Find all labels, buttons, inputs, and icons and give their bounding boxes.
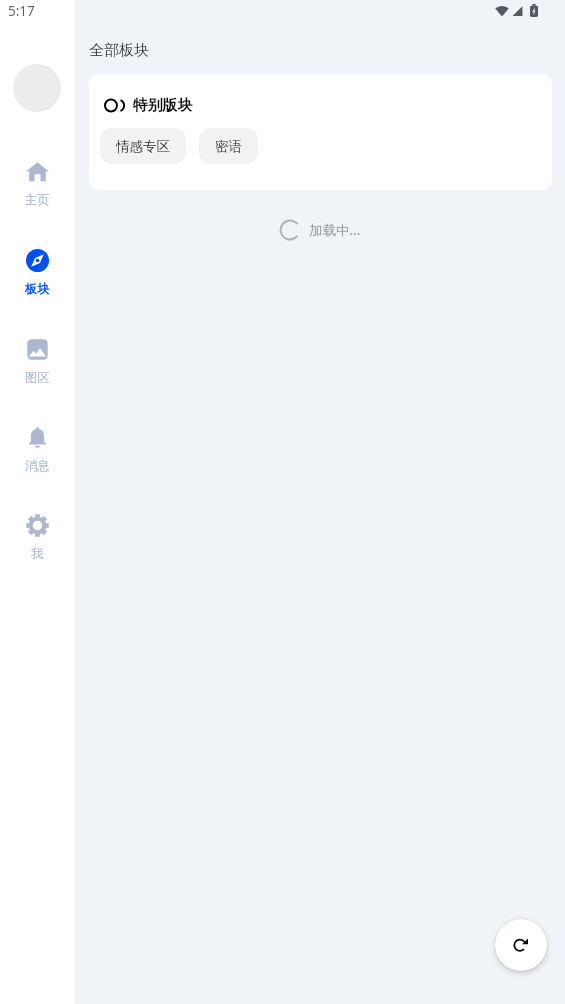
staticText: 主页 (25, 192, 50, 207)
button[interactable]: 图区 (0, 330, 74, 386)
staticText: 特别版块 (133, 96, 193, 115)
button[interactable]: 密语 (199, 128, 258, 164)
staticText: 密语 (215, 138, 242, 155)
staticText: 消息 (25, 458, 50, 473)
button[interactable]: Profile (13, 64, 61, 112)
staticText: 板块 (25, 281, 50, 296)
button[interactable]: 消息 (0, 418, 74, 474)
button[interactable]: 主页 (0, 152, 74, 208)
staticText: 全部板块 (89, 41, 149, 60)
staticText: 我 (31, 546, 44, 561)
staticText: 5:17 (8, 2, 35, 20)
button[interactable]: 我 (0, 506, 74, 562)
staticText: 情感专区 (116, 138, 170, 155)
staticText: 加载中... (309, 221, 361, 239)
button[interactable]: Refresh (495, 919, 547, 971)
button[interactable]: 板块 (0, 241, 74, 297)
button[interactable]: 情感专区 (100, 128, 186, 164)
staticText: 图区 (25, 370, 50, 385)
button[interactable]: 特别版块 (104, 96, 193, 115)
